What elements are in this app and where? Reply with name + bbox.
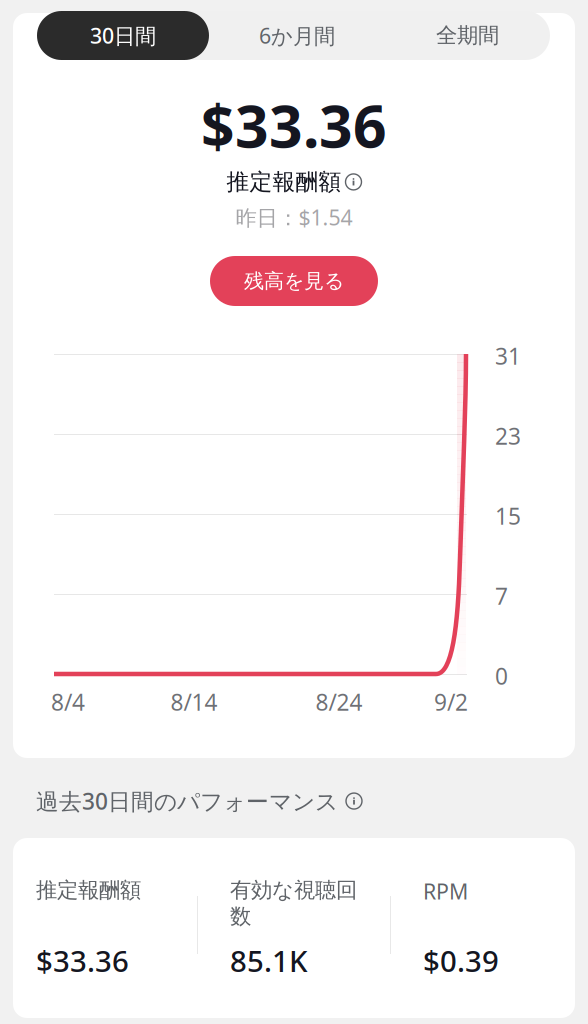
staticText: 7 <box>495 581 508 611</box>
staticText: 8/4 <box>51 687 85 717</box>
staticText: 23 <box>495 421 521 451</box>
staticText: 6か月間 <box>259 21 335 50</box>
staticText: RPM <box>423 877 468 905</box>
staticText: $33.36 <box>36 941 129 980</box>
staticText: 全期間 <box>436 22 499 49</box>
staticText: 0 <box>495 661 508 691</box>
button[interactable]: 6か月間 <box>209 11 385 60</box>
button[interactable]: 全期間 <box>385 11 550 60</box>
staticText: 昨日：$1.54 <box>235 203 352 231</box>
staticText: 8/24 <box>315 687 362 717</box>
staticText: 31 <box>495 341 521 371</box>
button[interactable]: 30日間 <box>37 11 209 60</box>
staticText: 30日間 <box>90 21 156 50</box>
staticText: 9/2 <box>434 687 468 717</box>
staticText: $0.39 <box>423 941 499 980</box>
button[interactable]: 残高を見る <box>210 256 378 306</box>
staticText: 8/14 <box>170 687 217 717</box>
staticText: 有効な視聴回数 <box>230 877 357 929</box>
staticText: 推定報酬額 <box>36 877 141 903</box>
staticText: 残高を見る <box>244 269 344 293</box>
staticText: 85.1K <box>230 941 308 980</box>
staticText: 過去30日間のパフォーマンス <box>36 786 338 816</box>
staticText: $33.36 <box>201 86 387 164</box>
staticText: 15 <box>495 501 521 531</box>
staticText: 推定報酬額 <box>226 168 341 196</box>
